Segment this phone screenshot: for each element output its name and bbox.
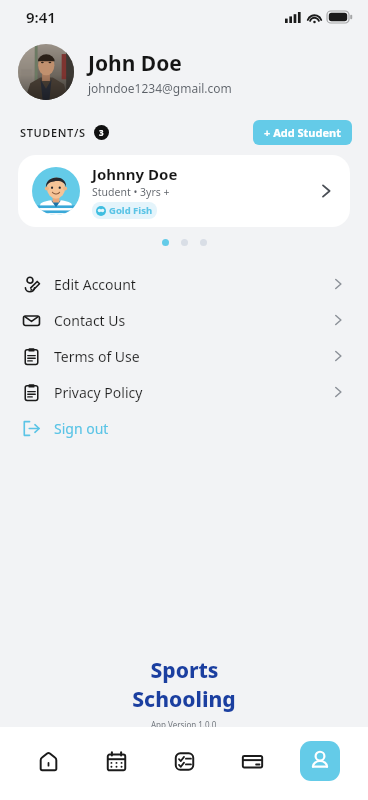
staticText: 9:41 [26,7,56,27]
button[interactable]: Terms of Use [0,338,368,374]
button[interactable]: John Doe [18,44,350,100]
staticText: Terms of Use [54,347,140,366]
button[interactable]: Home [28,741,68,781]
staticText: + Add Student [264,125,341,140]
staticText: Contact Us [54,311,126,330]
button[interactable]: Calendar [96,741,136,781]
staticText: Privacy Policy [54,383,143,402]
button[interactable]: Payments [232,741,272,781]
staticText: John Doe [88,49,182,78]
staticText: johndoe1234@gmail.com [88,80,232,96]
button[interactable]: Contact Us [0,302,368,338]
staticText: App Version 1.0.0 [151,719,217,730]
staticText: Sign out [54,419,109,438]
button[interactable]: Edit Account [0,266,368,302]
staticText: Student • 3yrs + [92,185,170,199]
button[interactable]: + Add Student [253,120,352,145]
button[interactable]: Johnny Doe [18,155,350,227]
staticText: 3 [99,127,104,138]
staticText: Gold Fish [109,204,153,217]
staticText: Schooling [132,685,236,714]
staticText: STUDENT/S [20,125,86,140]
staticText: Johnny Doe [92,164,178,184]
staticText: Sports [150,656,219,685]
button[interactable]: Privacy Policy [0,374,368,410]
button[interactable]: Tasks [164,741,204,781]
button[interactable]: Profile [300,741,340,781]
staticText: Edit Account [54,275,136,294]
button[interactable]: Sign out [0,410,368,446]
